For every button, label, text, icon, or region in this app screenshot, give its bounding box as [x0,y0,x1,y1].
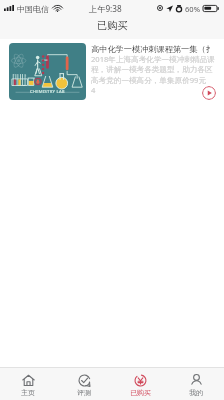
staticText: 2018年上海高考化学一模冲刺精品课程，讲解一模考各类题型，助力各区高考党的一模… [91,54,216,95]
staticText: 60% [185,4,200,14]
button[interactable]: Play [202,86,216,100]
staticText: CHEMISTRY LAB [30,89,65,95]
staticText: 中国电信 [17,4,49,14]
button[interactable]: 我的 [168,368,224,400]
staticText: 上午9:38 [89,3,122,14]
staticText: 高中化学一模冲刺课程第一集（扌 [91,44,214,54]
staticText: 已购买 [97,19,128,32]
button[interactable]: 评测 [56,368,112,400]
button[interactable]: CHEMISTRY LAB [0,39,224,103]
staticText: 我的 [189,388,203,397]
staticText: 评测 [77,388,91,397]
staticText: 已购买 [130,388,151,397]
button[interactable]: 已购买 [112,368,168,400]
button[interactable]: 主页 [0,368,56,400]
staticText: 主页 [21,388,35,397]
